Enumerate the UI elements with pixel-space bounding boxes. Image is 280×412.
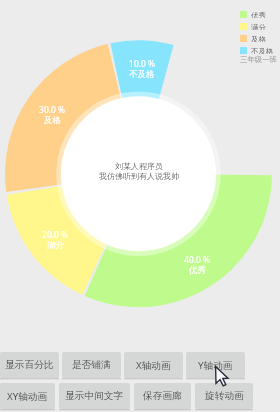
staticText: 是否铺满 [72,359,111,371]
staticText: 不及格 [129,69,155,80]
staticText: 满分 [251,23,266,30]
staticText: 显示百分比 [5,359,54,371]
staticText: 保存画廊 [143,390,182,402]
staticText: 三年级一班 [240,55,277,64]
staticText: 满分 [47,240,64,251]
button[interactable]: 显示中间文字 [59,383,130,409]
button[interactable]: 是否铺满 [62,352,121,378]
staticText: X轴动画 [136,359,171,372]
staticText: 显示中间文字 [65,390,124,402]
staticText: 40.0 % [184,254,210,265]
button[interactable]: XY轴动画 [0,383,55,409]
button[interactable]: Y轴动画 [186,352,245,378]
staticText: 10.0 % [129,58,155,69]
button[interactable]: 旋转动画 [195,383,253,409]
staticText: 不及格 [251,47,274,54]
staticText: 20.0 % [42,229,68,240]
staticText: 刘某人程序员 [115,161,163,171]
staticText: 30.0 % [39,104,65,115]
button[interactable]: 保存画廊 [134,383,191,409]
staticText: 优秀 [189,265,206,276]
staticText: Y轴动画 [198,359,233,372]
button[interactable]: 显示百分比 [0,352,59,378]
button[interactable]: X轴动画 [124,352,183,378]
staticText: 及格 [251,35,266,42]
staticText: 优秀 [251,11,266,18]
staticText: XY轴动画 [7,390,48,403]
staticText: 旋转动画 [205,390,244,402]
staticText: 我仿佛听到有人说我帅 [99,171,179,181]
staticText: 及格 [44,115,61,126]
